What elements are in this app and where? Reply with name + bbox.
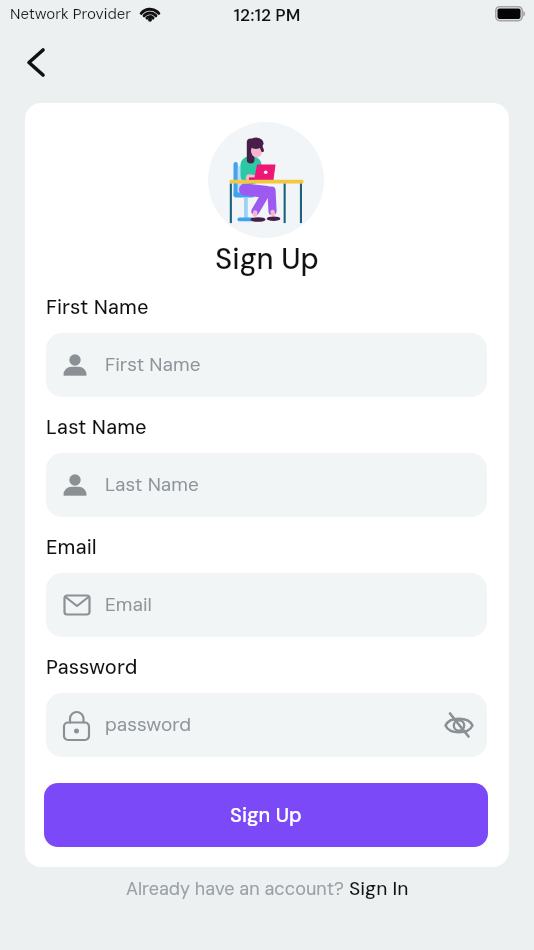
staticText: Last Name: [105, 472, 199, 497]
button[interactable]: Email: [46, 573, 487, 637]
staticText: Last Name: [46, 414, 147, 440]
button[interactable]: [431, 697, 487, 753]
button[interactable]: Sign Up: [44, 783, 488, 847]
staticText: Sign Up: [25, 240, 509, 278]
staticText: Email: [105, 592, 152, 617]
staticText: Already have an account?: [126, 877, 349, 900]
staticText: First Name: [105, 352, 201, 377]
staticText: password: [105, 712, 192, 737]
staticText: First Name: [46, 294, 149, 320]
staticText: Sign Up: [230, 802, 302, 828]
staticText: Network Provider: [10, 4, 132, 24]
staticText: 12:12 PM: [0, 4, 534, 26]
button[interactable]: Sign In: [349, 876, 409, 901]
button[interactable]: First Name: [46, 333, 487, 397]
staticText: Email: [46, 534, 97, 560]
staticText: Password: [46, 654, 138, 680]
button[interactable]: Last Name: [46, 453, 487, 517]
button[interactable]: password: [46, 693, 487, 757]
button[interactable]: [16, 40, 60, 84]
